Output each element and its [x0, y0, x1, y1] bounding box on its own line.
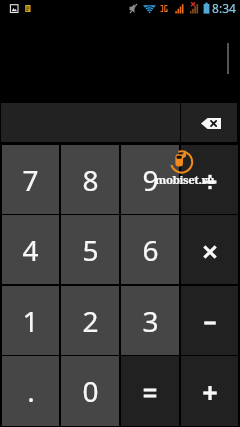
- staticText: .: [27, 372, 35, 410]
- button[interactable]: 9: [121, 145, 179, 214]
- staticText: 7: [22, 161, 39, 199]
- button[interactable]: Equals: [121, 356, 179, 426]
- button[interactable]: 3: [121, 286, 179, 355]
- button[interactable]: 2: [61, 286, 119, 355]
- button[interactable]: 7: [2, 145, 59, 214]
- button[interactable]: 4: [2, 215, 59, 284]
- button[interactable]: 0: [61, 356, 119, 426]
- staticText: 1: [22, 302, 39, 340]
- button[interactable]: Subtract: [181, 286, 238, 355]
- button[interactable]: 8: [61, 145, 119, 214]
- staticText: 2: [82, 302, 99, 340]
- button[interactable]: 6: [121, 215, 179, 284]
- button[interactable]: Delete: [181, 103, 237, 142]
- button[interactable]: 1: [2, 286, 59, 355]
- button[interactable]: Divide: [181, 145, 238, 214]
- button[interactable]: Add: [181, 356, 238, 426]
- staticText: 3: [142, 302, 159, 340]
- staticText: 9: [142, 161, 159, 199]
- staticText: 0: [82, 372, 99, 410]
- staticText: 8:34: [212, 0, 236, 16]
- staticText: 4: [22, 231, 39, 269]
- button[interactable]: Multiply: [181, 215, 238, 284]
- staticText: 6: [142, 231, 159, 269]
- staticText: 5: [82, 231, 99, 269]
- button[interactable]: 5: [61, 215, 119, 284]
- button[interactable]: .: [2, 356, 59, 426]
- staticText: mobiset.ru: [155, 172, 215, 188]
- staticText: 8: [82, 161, 99, 199]
